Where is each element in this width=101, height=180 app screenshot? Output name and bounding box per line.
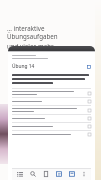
- button[interactable]: Antwort auswählen: [88, 117, 91, 120]
- button[interactable]: Antwort auswählen: [88, 100, 91, 103]
- button[interactable]: Antwort auswählen: [88, 125, 91, 128]
- button[interactable]: Antwort auswählen: [12, 98, 91, 105]
- button[interactable]: Antwort auswählen: [88, 133, 91, 136]
- button[interactable]: Aufgabe öffnen: [87, 65, 91, 69]
- button[interactable]: Antwort auswählen: [88, 109, 91, 112]
- button[interactable]: Antwort auswählen: [12, 123, 91, 130]
- button[interactable]: Notiz: [52, 168, 65, 180]
- button[interactable]: Markieren: [65, 168, 78, 180]
- button[interactable]: Lesezeichen: [39, 168, 52, 180]
- staticText: und vieles mehr.: [7, 42, 55, 50]
- button[interactable]: Weitere Optionen: [78, 168, 90, 180]
- button[interactable]: Antwort auswählen: [88, 92, 91, 95]
- button[interactable]: Antwort auswählen: [12, 115, 91, 122]
- button[interactable]: Inhaltsverzeichnis: [13, 168, 26, 180]
- staticText: Übung 14: [12, 63, 35, 70]
- button[interactable]: Antwort auswählen: [12, 131, 91, 138]
- staticText: ... interaktive Übungsaufgaben: [7, 24, 93, 40]
- button[interactable]: Antwort auswählen: [12, 106, 91, 114]
- button[interactable]: Suchen: [26, 168, 39, 180]
- button[interactable]: Antwort auswählen: [12, 89, 91, 97]
- button[interactable]: Übung 14: [12, 63, 91, 70]
